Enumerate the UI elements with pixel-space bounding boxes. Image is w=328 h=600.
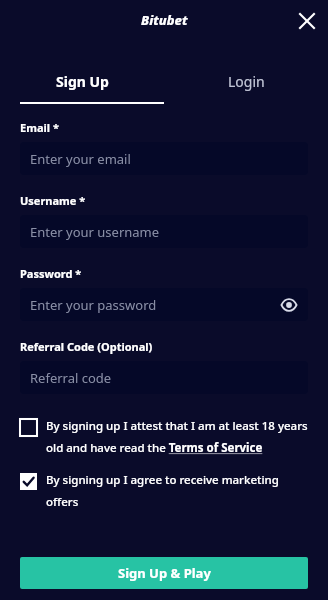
- staticText: Login: [228, 72, 265, 91]
- button[interactable]: Close: [294, 8, 320, 34]
- staticText: Email *: [20, 120, 59, 135]
- staticText: Sign Up & Play: [118, 564, 211, 582]
- button[interactable]: Sign Up & Play: [20, 557, 308, 589]
- button[interactable]: Enter your email: [20, 142, 308, 175]
- staticText: By signing up I agree to receive marketi…: [46, 472, 308, 510]
- staticText: Enter your password: [30, 296, 157, 314]
- staticText: Password *: [20, 266, 82, 281]
- staticText: Referral code: [30, 369, 112, 387]
- staticText: Bitubet: [141, 11, 188, 29]
- staticText: By signing up I attest that I am at leas…: [46, 418, 308, 456]
- button[interactable]: Sign Up: [0, 72, 164, 104]
- staticText: Enter your username: [30, 223, 160, 241]
- staticText: Username *: [20, 193, 86, 208]
- button[interactable]: Enter your username: [20, 215, 308, 248]
- button[interactable]: Enter your password: [20, 288, 308, 321]
- staticText: Referral Code (Optional): [20, 339, 153, 354]
- button[interactable]: Login: [164, 72, 328, 104]
- staticText: Sign Up: [56, 72, 109, 91]
- button[interactable]: Show password: [278, 294, 300, 316]
- staticText: Enter your email: [30, 150, 131, 168]
- button[interactable]: Referral code: [20, 361, 308, 394]
- button[interactable]: Unchecked: [20, 418, 308, 456]
- button[interactable]: Checked: [20, 472, 308, 510]
- button[interactable]: Checked: [20, 473, 37, 490]
- button[interactable]: Unchecked: [20, 419, 37, 436]
